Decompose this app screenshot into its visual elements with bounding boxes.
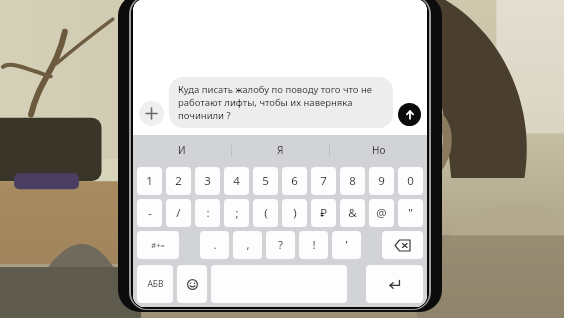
staticText: & [348,205,357,221]
button[interactable]: : [195,199,220,227]
staticText: 4 [233,173,240,189]
staticText: 7 [320,173,327,189]
staticText: @ [376,205,387,221]
button[interactable]: 5 [253,167,278,195]
button[interactable]: 9 [369,167,394,195]
button[interactable]: ? [266,231,295,259]
button[interactable]: Backspace [382,231,423,259]
button[interactable]: 8 [340,167,365,195]
button[interactable]: / [166,199,191,227]
button[interactable]: ( [253,199,278,227]
staticText: . [213,237,217,253]
staticText: ) [293,205,297,221]
staticText: ! [312,237,316,253]
staticText: 2 [175,173,182,189]
staticText: : [206,205,210,221]
button[interactable]: Но [330,135,427,165]
staticText: , [246,237,250,253]
staticText: ₽ [320,205,327,221]
button[interactable]: Send [398,103,421,126]
staticText: " [408,205,413,221]
button[interactable]: ) [282,199,307,227]
button[interactable]: . [200,231,229,259]
staticText: ? [278,237,283,253]
staticText: ; [235,205,239,221]
button[interactable]: 0 [398,167,423,195]
button[interactable]: 2 [166,167,191,195]
staticText: - [148,205,152,221]
button[interactable]: ; [224,199,249,227]
staticText: 9 [378,173,385,189]
staticText: Я [277,143,284,157]
staticText: 0 [407,173,414,189]
staticText: ( [264,205,268,221]
button[interactable]: 3 [195,167,220,195]
staticText: И [178,143,186,157]
button[interactable]: 6 [282,167,307,195]
button[interactable]: ₽ [311,199,336,227]
button[interactable]: Я [232,135,329,165]
button[interactable]: " [398,199,423,227]
button[interactable]: Куда писать жалобу по поводу того что не… [169,77,393,128]
button[interactable]: АБВ [137,265,173,303]
button[interactable]: И [133,135,231,165]
button[interactable]: @ [369,199,394,227]
button[interactable]: ! [299,231,328,259]
button[interactable]: , [233,231,262,259]
button[interactable]: 4 [224,167,249,195]
staticText: АБВ [147,278,164,290]
button[interactable]: #+= [137,231,179,259]
staticText: Но [372,143,386,157]
staticText: 1 [146,173,153,189]
button[interactable]: ' [332,231,361,259]
button[interactable]: 7 [311,167,336,195]
staticText: 3 [204,173,211,189]
staticText: / [176,205,181,221]
staticText: Куда писать жалобу по поводу того что не… [178,83,384,122]
staticText: #+= [151,240,165,250]
button[interactable]: & [340,199,365,227]
staticText: 8 [349,173,356,189]
button[interactable]: Enter [366,265,423,303]
staticText: 6 [291,173,298,189]
staticText: 5 [262,173,269,189]
button[interactable]: 1 [137,167,162,195]
button[interactable]: - [137,199,162,227]
staticText: ' [345,237,348,253]
button[interactable]: Emoji [177,265,207,303]
button[interactable]: Attach [139,101,164,126]
